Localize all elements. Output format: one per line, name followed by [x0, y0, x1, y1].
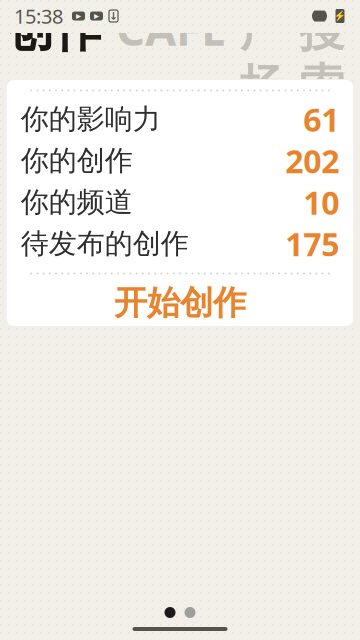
- staticText: 待发布的创作: [21, 227, 189, 261]
- staticText: ↓: [109, 10, 118, 22]
- staticText: ⚡: [334, 11, 346, 21]
- button[interactable]: 搜索: [299, 3, 344, 114]
- button[interactable]: 广场: [240, 3, 285, 114]
- staticText: ▶: [76, 12, 81, 20]
- button[interactable]: 你的频道: [7, 181, 353, 223]
- button[interactable]: 你的创作: [7, 140, 353, 181]
- staticText: 搜索: [299, 3, 344, 114]
- button[interactable]: 创作: [6, 0, 102, 59]
- staticText: 广场: [240, 3, 285, 114]
- staticText: 61: [303, 98, 339, 140]
- staticText: 你的创作: [21, 144, 133, 178]
- staticText: 10: [303, 181, 339, 223]
- button[interactable]: CAFE: [116, 0, 226, 58]
- staticText: 你的影响力: [21, 102, 161, 136]
- staticText: 开始创作: [114, 282, 246, 323]
- staticText: CAFE: [116, 0, 226, 58]
- staticText: ▶: [94, 12, 99, 20]
- staticText: 你的频道: [21, 185, 133, 219]
- button[interactable]: 开始创作: [7, 274, 353, 331]
- staticText: 202: [285, 139, 339, 182]
- staticText: 创作: [6, 0, 102, 59]
- staticText: 175: [285, 222, 339, 265]
- button[interactable]: 待发布的创作: [7, 223, 353, 264]
- button[interactable]: 你的影响力: [7, 98, 353, 140]
- staticText: 15:38: [14, 3, 63, 29]
